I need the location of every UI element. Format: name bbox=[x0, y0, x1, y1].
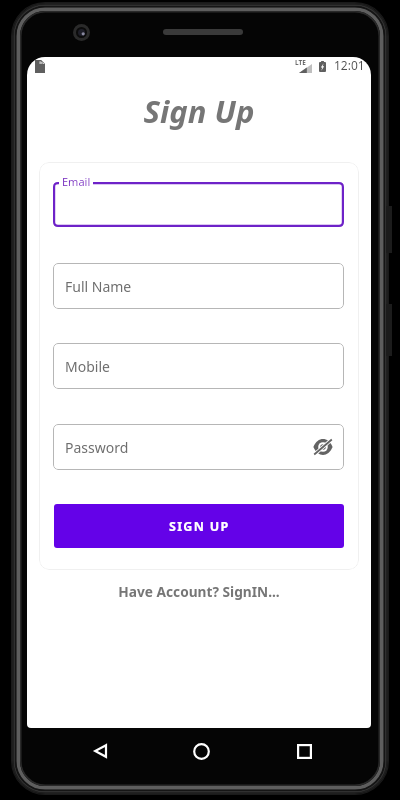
button[interactable]: Toggle password visibility bbox=[310, 434, 336, 460]
staticText: Sign Up bbox=[27, 90, 371, 132]
staticText: 12:01 bbox=[334, 57, 365, 73]
staticText: Email bbox=[62, 174, 91, 189]
staticText: LTE bbox=[295, 58, 306, 67]
button[interactable]: Password bbox=[53, 424, 344, 470]
button[interactable]: Back bbox=[85, 736, 115, 766]
button[interactable]: Full Name bbox=[53, 263, 344, 309]
button[interactable]: Home bbox=[186, 736, 216, 766]
staticText: Mobile bbox=[65, 357, 110, 376]
staticText: SIGN UP bbox=[169, 518, 230, 535]
button[interactable]: Recent apps bbox=[289, 736, 319, 766]
button[interactable]: Have Account? SignIN... bbox=[27, 582, 371, 601]
staticText: Password bbox=[65, 438, 129, 457]
button[interactable]: Mobile bbox=[53, 343, 344, 389]
button[interactable]: Email bbox=[53, 182, 344, 227]
button[interactable]: SIGN UP bbox=[54, 504, 344, 548]
staticText: Full Name bbox=[65, 277, 132, 296]
